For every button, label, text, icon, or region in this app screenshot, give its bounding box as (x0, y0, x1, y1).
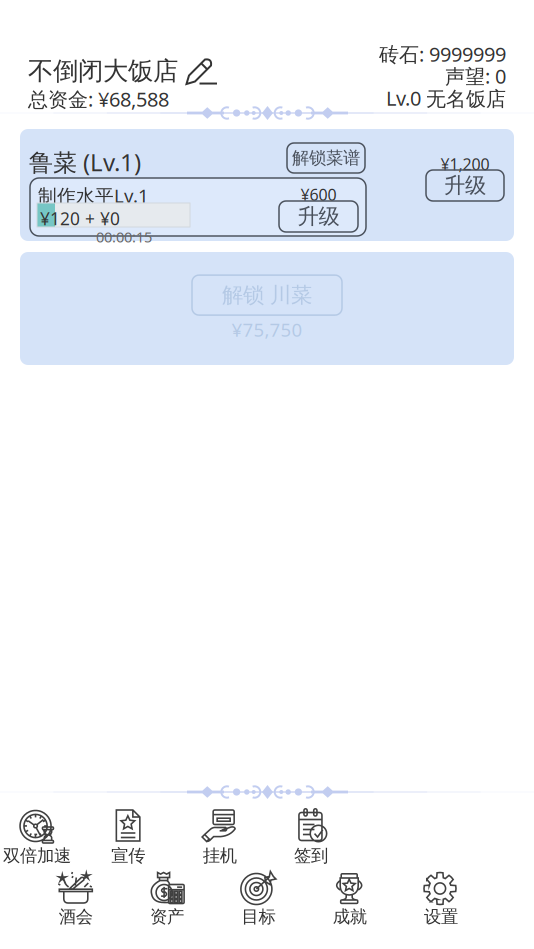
staticText: 资产 (150, 906, 184, 927)
button[interactable]: 设置 (395, 867, 487, 928)
staticText: 制作水平Lv.1 (38, 183, 149, 208)
staticText: 宣传 (111, 845, 145, 866)
staticText: 声望: 0 (445, 63, 506, 89)
button[interactable]: 重命名饭店 (184, 53, 220, 89)
staticText: 升级 (297, 203, 339, 230)
staticText: ¥1,200 (440, 153, 489, 175)
staticText: ¥120 + ¥0 (40, 207, 120, 230)
staticText: ¥75,750 (231, 317, 302, 342)
staticText: 总资金: ¥68,588 (28, 86, 169, 112)
button[interactable]: 双倍加速 (0, 806, 83, 867)
staticText: 不倒闭大饭店 (28, 55, 178, 86)
staticText: 目标 (241, 906, 275, 927)
staticText: 升级 (444, 172, 486, 199)
staticText: Lv.0 无名饭店 (386, 85, 506, 111)
button[interactable]: 签到 (265, 806, 357, 867)
staticText: 解锁菜谱 (292, 147, 360, 169)
staticText: 双倍加速 (3, 845, 71, 866)
staticText: 砖石: 9999999 (379, 41, 506, 67)
staticText: ¥600 (300, 184, 336, 205)
button[interactable]: 挂机 (174, 806, 265, 867)
button[interactable]: 酒会 (30, 867, 121, 928)
button[interactable]: 目标 (213, 867, 304, 928)
staticText: 解锁 川菜 (222, 282, 312, 308)
button[interactable]: 资产 (121, 867, 213, 928)
staticText: 酒会 (59, 906, 93, 927)
staticText: 00:00:15 (96, 227, 152, 246)
button[interactable]: 升级 (279, 201, 358, 232)
button[interactable]: 升级 (426, 170, 504, 201)
staticText: 鲁菜 (Lv.1) (29, 146, 141, 178)
button[interactable]: 解锁 川菜 (192, 275, 342, 315)
staticText: 成就 (333, 906, 367, 927)
button[interactable]: 解锁菜谱 (287, 143, 365, 173)
button[interactable]: 宣传 (83, 806, 174, 867)
staticText: 挂机 (203, 845, 237, 866)
staticText: 签到 (294, 845, 328, 866)
button[interactable]: 成就 (304, 867, 395, 928)
staticText: 设置 (424, 906, 458, 927)
